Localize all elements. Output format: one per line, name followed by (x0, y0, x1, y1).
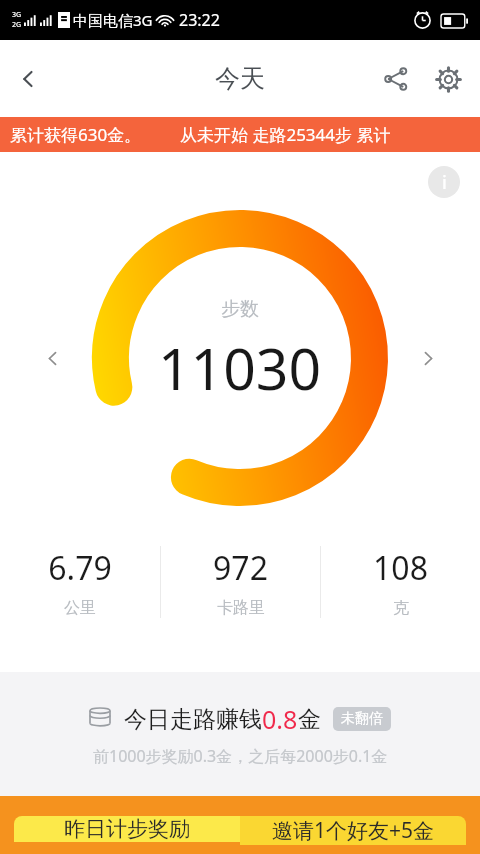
staticText: 今天 (215, 63, 265, 94)
staticText: 步数 (221, 297, 259, 321)
staticText: 金 (298, 705, 321, 734)
button[interactable]: Back (0, 40, 56, 117)
staticText: 6.79 (48, 546, 112, 590)
staticText: 邀请1个好友+5金 (272, 816, 435, 845)
button[interactable]: 昨日计步奖励 (14, 816, 240, 842)
staticText: 0.8 (262, 702, 298, 736)
button[interactable]: Previous day (34, 340, 70, 376)
staticText: 972 (213, 546, 268, 590)
staticText: 108 (373, 546, 428, 590)
staticText: 前1000步奖励0.3金，之后每2000步0.1金 (93, 745, 388, 767)
button[interactable]: 累计获得630金。 (0, 117, 480, 152)
button[interactable]: 6.79 (0, 546, 160, 618)
button[interactable]: Share (370, 53, 422, 105)
staticText: i (442, 170, 447, 195)
staticText: 未翻倍 (341, 710, 383, 728)
button[interactable]: 108 (321, 546, 480, 618)
staticText: 累计获得630金。 (10, 123, 142, 146)
button[interactable]: 邀请1个好友+5金 (240, 816, 466, 845)
staticText: 11030 (158, 329, 322, 407)
staticText: 昨日计步奖励 (64, 816, 190, 842)
button[interactable]: Info (428, 166, 460, 198)
button[interactable]: Settings (422, 53, 474, 105)
button[interactable]: 972 (161, 546, 320, 618)
staticText: 今日走路赚钱 (124, 705, 262, 734)
button[interactable]: Next day (410, 340, 446, 376)
staticText: 3G (12, 10, 22, 20)
staticText: 23:22 (179, 9, 220, 31)
staticText: 公里 (64, 598, 96, 618)
staticText: 中国电信3G (73, 10, 153, 30)
button[interactable]: 今日走路赚钱 (0, 672, 480, 796)
staticText: 卡路里 (217, 598, 265, 618)
staticText: 从未开始 走路25344步 累计 (180, 123, 391, 146)
staticText: 克 (393, 598, 409, 618)
staticText: 2G (12, 20, 22, 30)
